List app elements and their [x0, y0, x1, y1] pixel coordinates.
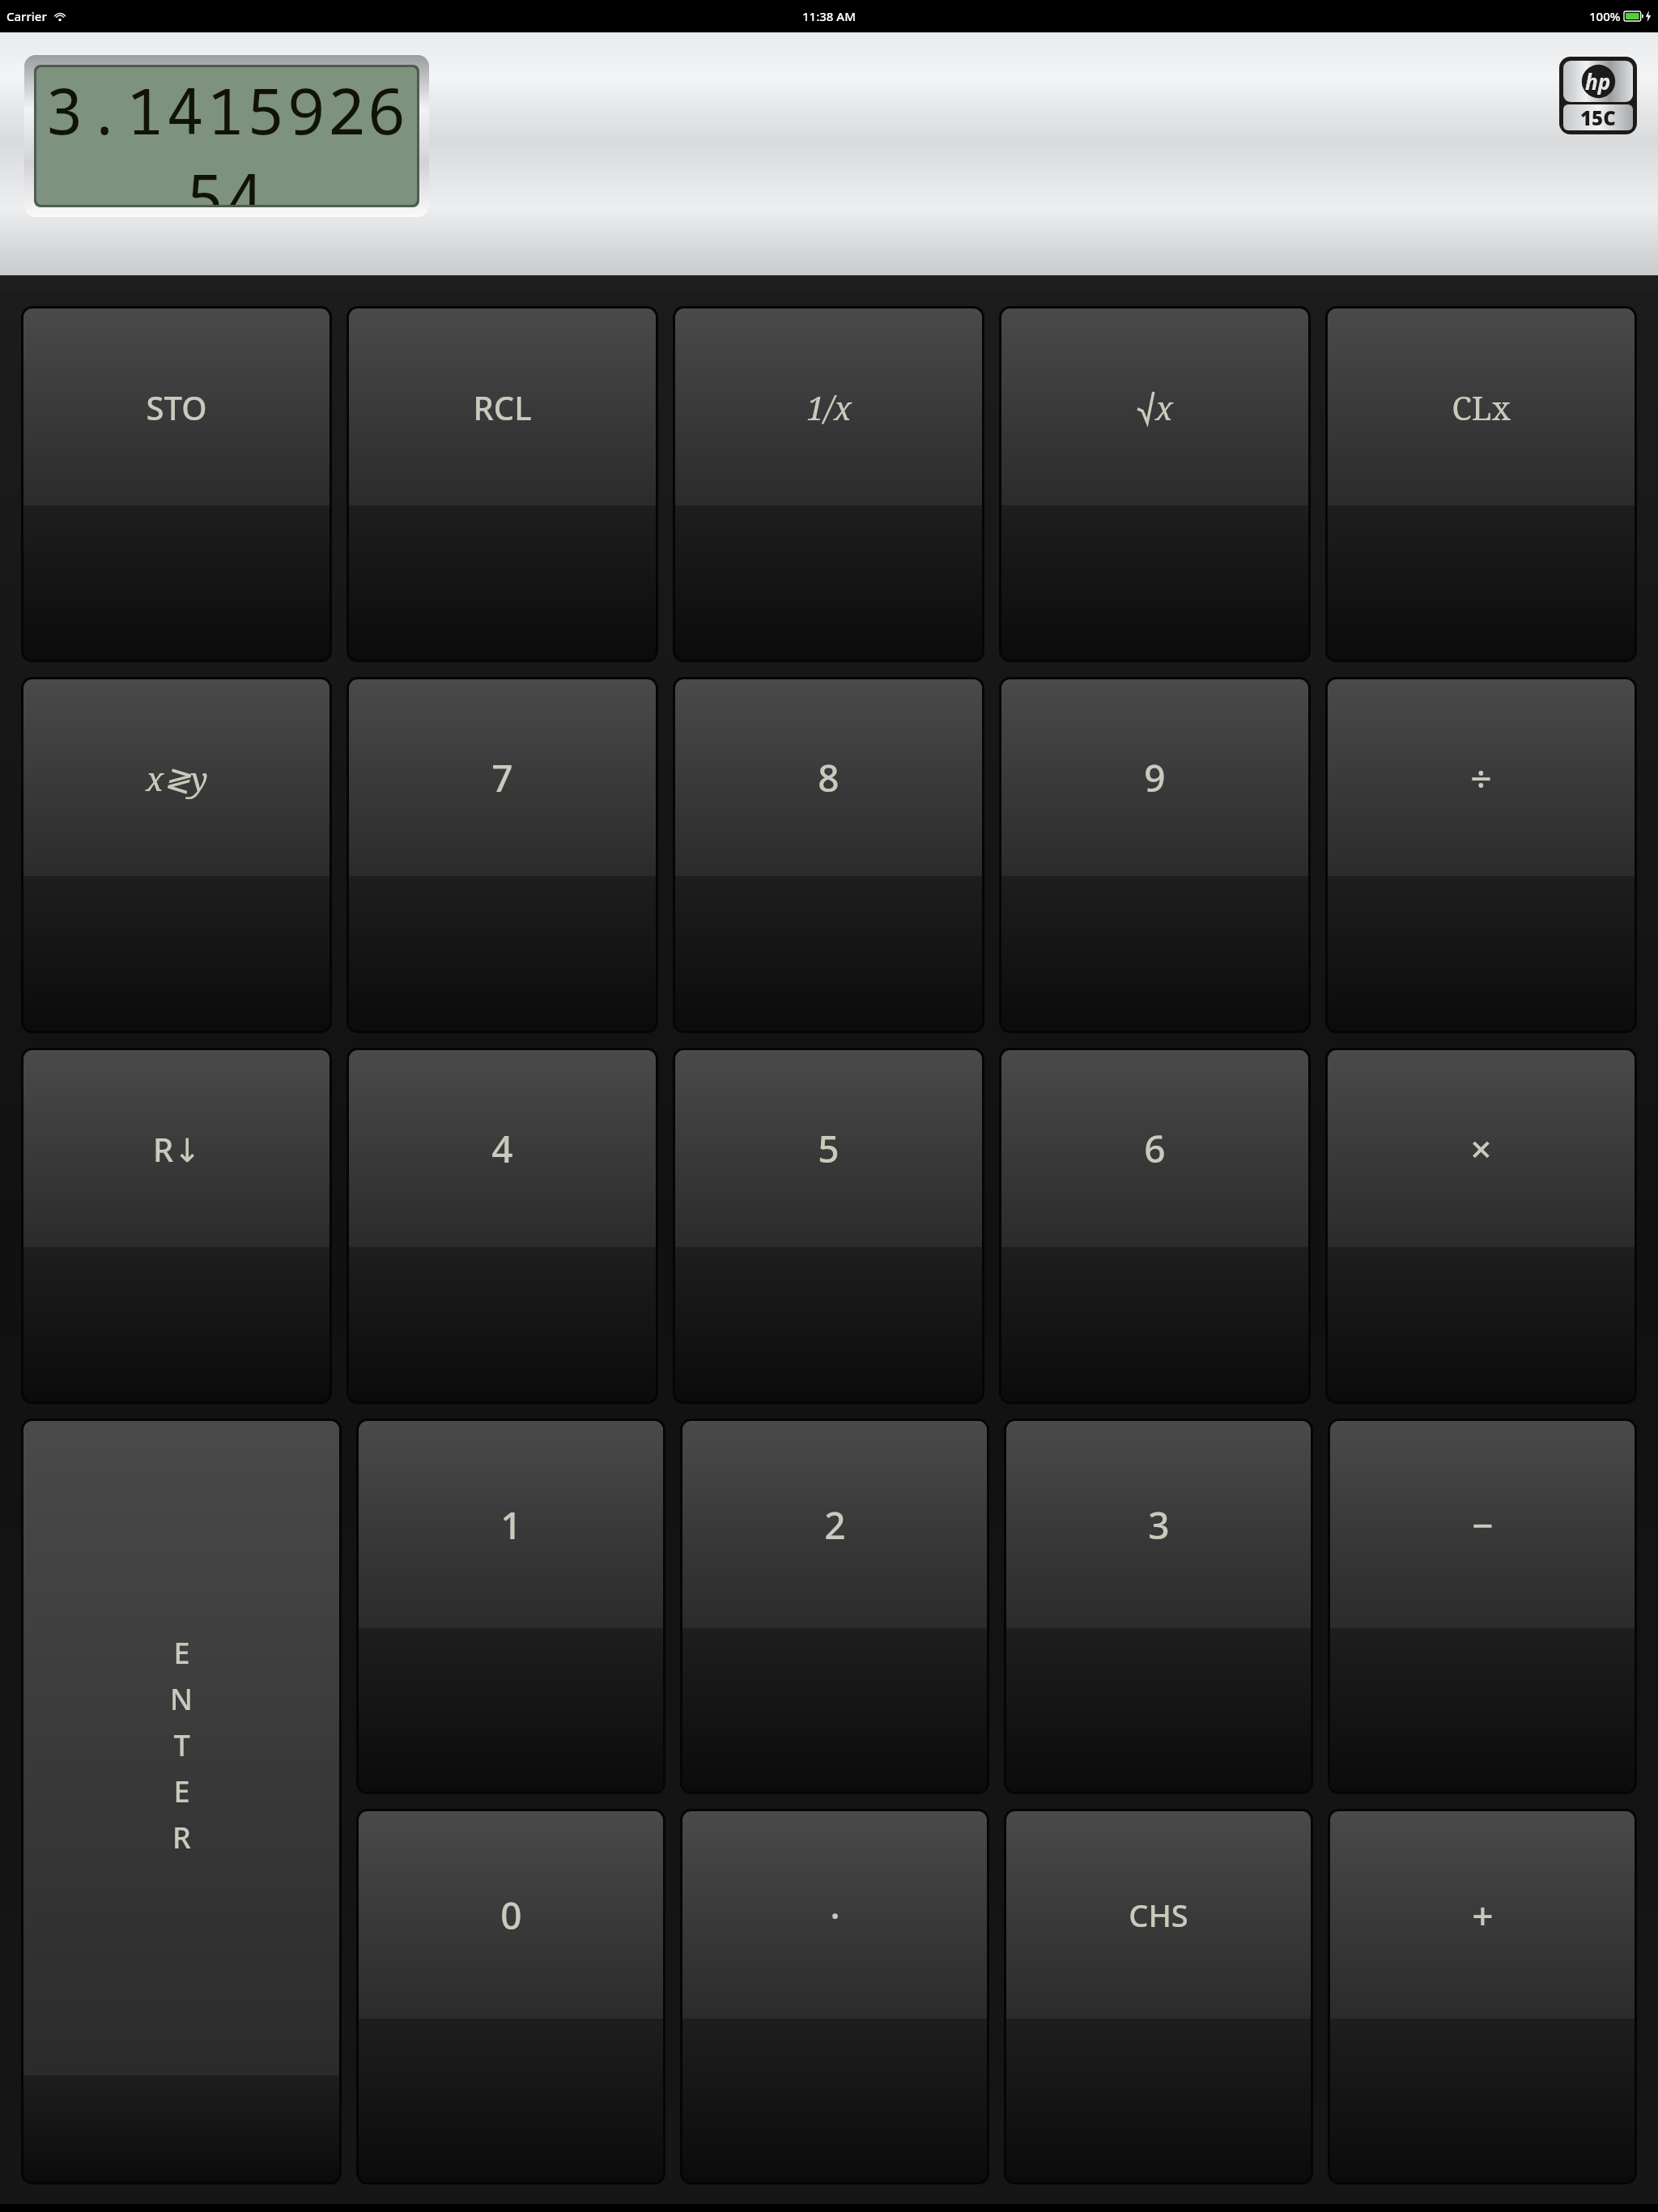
button[interactable]: CHS — [1006, 1811, 1311, 2182]
staticText: + — [1472, 1890, 1494, 1941]
staticText: 1/x — [806, 385, 852, 429]
button[interactable]: Square root of x — [1001, 308, 1308, 660]
button[interactable]: 2 — [682, 1421, 987, 1792]
staticText: 0 — [500, 1890, 522, 1941]
staticText: 8 — [818, 752, 840, 803]
staticText: R↓ — [153, 1127, 201, 1171]
staticText: 11:38 AM — [802, 8, 856, 24]
button[interactable]: Add — [1330, 1811, 1635, 2182]
staticText: × — [1470, 1123, 1492, 1174]
button[interactable]: 1/x — [675, 308, 982, 660]
button[interactable]: 8 — [675, 679, 982, 1031]
button[interactable]: 4 — [349, 1050, 656, 1402]
staticText: E — [173, 1772, 190, 1811]
staticText: CHS — [1129, 1894, 1188, 1936]
staticText: 4 — [491, 1123, 513, 1174]
staticText: CLx — [1452, 385, 1511, 429]
button[interactable]: Multiply — [1328, 1050, 1635, 1402]
other: HP 15C — [1563, 61, 1633, 130]
button[interactable]: E — [23, 1421, 339, 2182]
staticText: 100% — [1589, 8, 1621, 24]
staticText: T — [173, 1725, 190, 1765]
staticText: 2 — [824, 1499, 846, 1551]
staticText: ÷ — [1470, 752, 1492, 803]
button[interactable]: x≷y — [23, 679, 329, 1031]
staticText: hp — [1585, 67, 1611, 96]
staticText: Carrier — [6, 8, 47, 24]
staticText: 6 — [1144, 1123, 1166, 1174]
button[interactable]: 0 — [359, 1811, 663, 2182]
staticText: R — [172, 1818, 191, 1857]
button[interactable]: Decimal point — [682, 1811, 987, 2182]
staticText: x≷y — [146, 756, 208, 800]
staticText: · — [830, 1890, 840, 1941]
staticText: 9 — [1144, 752, 1166, 803]
staticText: 7 — [491, 752, 513, 803]
staticText: − — [1472, 1499, 1494, 1551]
button[interactable]: 3 — [1006, 1421, 1311, 1792]
staticText: RCL — [473, 385, 532, 429]
staticText: 3 — [1148, 1499, 1170, 1551]
button[interactable]: Divide — [1328, 679, 1635, 1031]
staticText: STO — [146, 385, 207, 429]
staticText: 15C — [1580, 104, 1616, 130]
staticText: 1 — [500, 1499, 522, 1551]
staticText: 3.141592654 — [36, 67, 417, 205]
staticText: E — [173, 1633, 190, 1673]
staticText: N — [170, 1679, 193, 1719]
button[interactable]: 5 — [675, 1050, 982, 1402]
button[interactable]: 9 — [1001, 679, 1308, 1031]
button[interactable]: 7 — [349, 679, 656, 1031]
button[interactable]: RCL — [349, 308, 656, 660]
staticText: 5 — [818, 1123, 840, 1174]
button[interactable]: 6 — [1001, 1050, 1308, 1402]
button[interactable]: R↓ — [23, 1050, 329, 1402]
button[interactable]: Subtract — [1330, 1421, 1635, 1792]
button[interactable]: 1 — [359, 1421, 663, 1792]
staticText: x — [1155, 385, 1173, 429]
button[interactable]: CLx — [1328, 308, 1635, 660]
button[interactable]: STO — [23, 308, 329, 660]
